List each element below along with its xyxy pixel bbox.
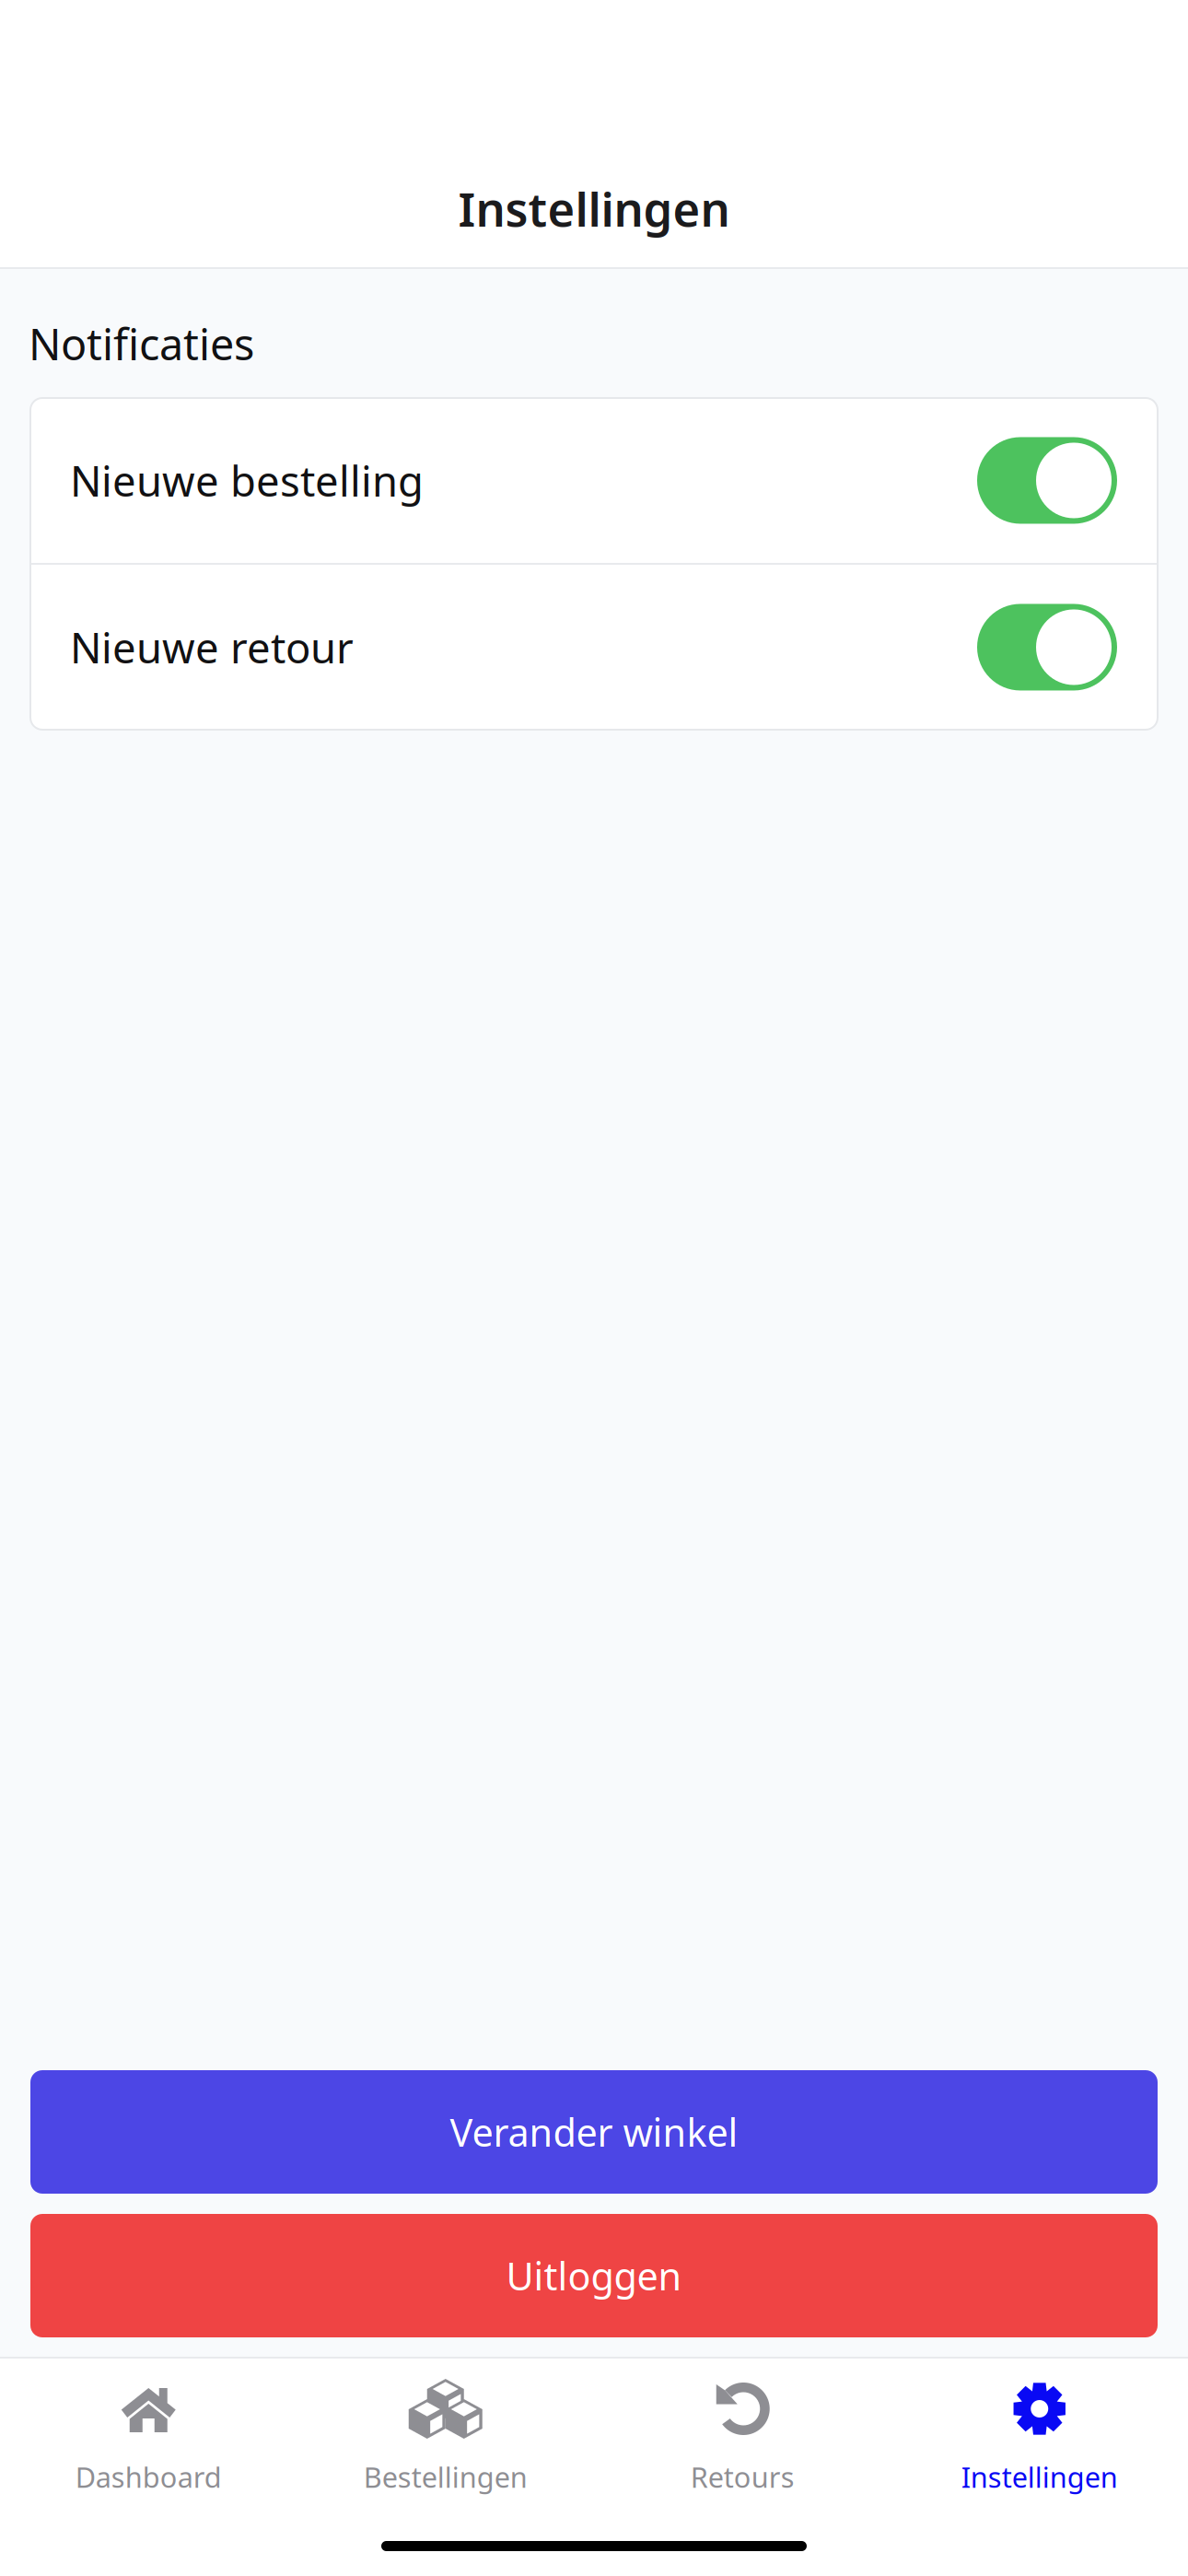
button[interactable]: Bestellingen bbox=[297, 2357, 594, 2449]
button[interactable]: Verander winkel bbox=[30, 2070, 1158, 2194]
staticText: Nieuwe retour bbox=[70, 619, 354, 675]
staticText: Uitloggen bbox=[506, 2250, 682, 2301]
staticText: Instellingen bbox=[961, 2458, 1118, 2496]
staticText: Nieuwe bestelling bbox=[70, 453, 424, 508]
button[interactable]: Uitloggen bbox=[30, 2214, 1158, 2337]
button[interactable]: Instellingen bbox=[891, 2357, 1188, 2449]
button[interactable]: Dashboard bbox=[0, 2357, 297, 2449]
staticText: Dashboard bbox=[75, 2458, 222, 2496]
staticText: Verander winkel bbox=[450, 2107, 738, 2157]
staticText: Instellingen bbox=[458, 178, 730, 240]
staticText: Retours bbox=[691, 2458, 795, 2496]
button[interactable]: Retours bbox=[594, 2357, 891, 2449]
button[interactable]: Nieuwe bestelling bbox=[30, 398, 1158, 563]
staticText: Bestellingen bbox=[364, 2458, 528, 2496]
staticText: Notificaties bbox=[29, 315, 254, 372]
button[interactable]: Nieuwe retour bbox=[30, 565, 1158, 730]
